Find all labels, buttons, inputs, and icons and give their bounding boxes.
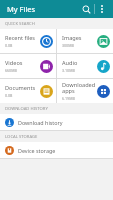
staticText: LOCAL STORAGE [5, 134, 38, 140]
staticText: 3.10MB [62, 68, 75, 73]
button[interactable]: Downloaded apps [57, 79, 113, 103]
staticText: 300MB [62, 43, 74, 48]
button[interactable]: Download history [0, 114, 113, 130]
staticText: 660MB [5, 68, 17, 73]
staticText: Recent files [5, 34, 36, 42]
staticText: Download history [18, 119, 63, 126]
staticText: Videos [5, 59, 23, 67]
staticText: My Files [7, 4, 36, 14]
button[interactable]: Device storage [0, 142, 113, 158]
staticText: 0.0B [5, 43, 13, 48]
button[interactable]: Recent files [0, 29, 56, 53]
button[interactable]: Search [78, 1, 94, 17]
staticText: 6.19MB [62, 96, 75, 101]
button[interactable]: Images [57, 29, 113, 53]
staticText: 0.0B [5, 93, 13, 98]
staticText: DOWNLOAD HISTORY [5, 106, 48, 112]
button[interactable]: More options [95, 2, 109, 16]
staticText: Images [62, 34, 82, 42]
button[interactable]: Videos [0, 54, 56, 78]
staticText: QUICK SEARCH [5, 21, 35, 27]
button[interactable]: Documents [0, 79, 56, 103]
staticText: Downloaded apps [62, 81, 96, 95]
staticText: Audio [62, 59, 78, 67]
staticText: Documents [5, 84, 36, 92]
staticText: Device storage [18, 147, 56, 154]
button[interactable]: Audio [57, 54, 113, 78]
